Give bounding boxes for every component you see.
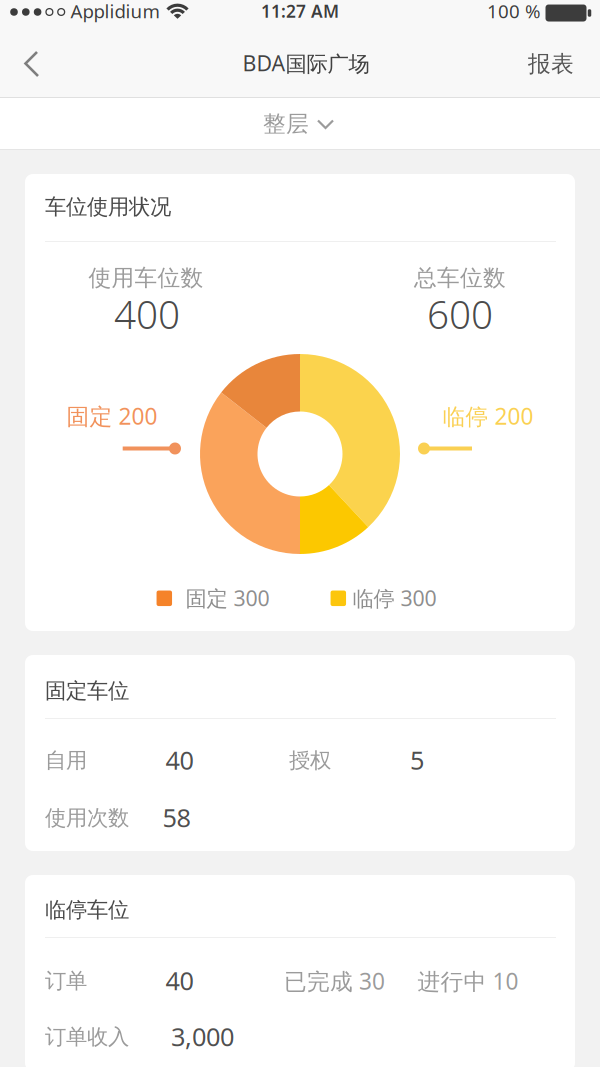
staticText: 报表 (528, 50, 574, 78)
staticText: 58 (162, 801, 190, 834)
staticText: 3,000 (171, 1020, 234, 1053)
staticText: 40 (165, 743, 193, 777)
staticText: BDA国际广场 (242, 49, 369, 77)
staticText: 40 (165, 964, 193, 997)
staticText: 订单收入 (45, 1024, 129, 1050)
staticText: 进行中 10 (417, 966, 518, 996)
staticText: 整层 (263, 110, 309, 138)
staticText: 使用车位数 (88, 264, 203, 292)
staticText: 固定 300 (185, 584, 269, 612)
staticText: 总车位数 (414, 264, 506, 292)
staticText: 临停 300 (352, 584, 436, 612)
staticText: 已完成 30 (284, 966, 385, 996)
button[interactable]: 整层 (0, 98, 600, 150)
button[interactable]: 报表 (516, 39, 586, 89)
staticText: 车位使用状况 (45, 194, 171, 220)
staticText: 订单 (45, 968, 87, 994)
staticText: 400 (114, 288, 180, 340)
staticText: 固定车位 (45, 678, 129, 704)
staticText: 自用 (45, 747, 87, 774)
staticText: 固定 200 (66, 401, 157, 431)
staticText: 使用次数 (45, 805, 129, 831)
staticText: Applidium (70, 0, 159, 23)
staticText: 5 (410, 743, 424, 777)
staticText: 100 % (487, 0, 541, 23)
staticText: 600 (427, 288, 493, 340)
staticText: 临停 200 (442, 401, 533, 431)
staticText: 授权 (289, 747, 331, 774)
button[interactable]: Back (10, 40, 54, 86)
staticText: 临停车位 (45, 897, 129, 923)
staticText: 11:27 AM (261, 0, 339, 22)
